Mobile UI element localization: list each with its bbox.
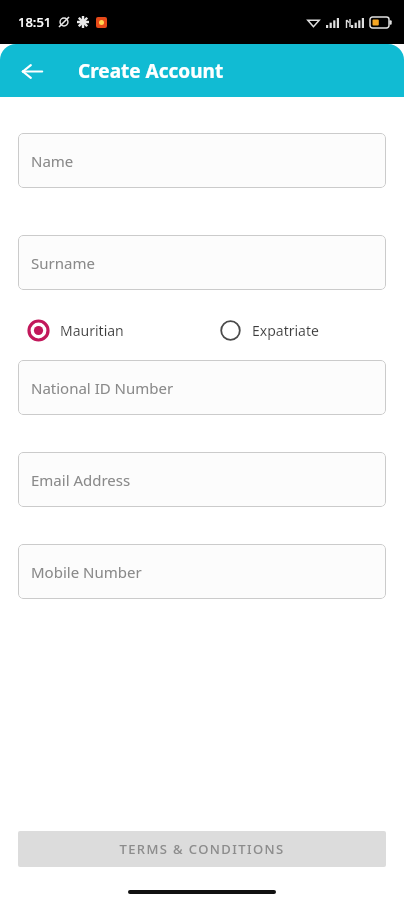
staticText: Surname — [31, 253, 95, 273]
staticText: Email Address — [31, 470, 131, 490]
staticText: Create Account — [78, 58, 224, 84]
button[interactable]: Name — [18, 133, 386, 188]
button[interactable]: Mobile Number — [18, 544, 386, 599]
button[interactable]: Expatriate — [210, 313, 319, 347]
button[interactable]: Back — [12, 51, 52, 91]
staticText: Mauritian — [60, 321, 124, 340]
staticText: Expatriate — [252, 321, 319, 340]
button[interactable]: Email Address — [18, 452, 386, 507]
button[interactable]: TERMS & CONDITIONS — [18, 831, 386, 867]
staticText: 18:51 — [18, 13, 52, 31]
button[interactable]: Mauritian — [18, 313, 210, 347]
staticText: TERMS & CONDITIONS — [119, 840, 285, 858]
staticText: National ID Number — [31, 378, 174, 398]
staticText: Mobile Number — [31, 562, 142, 582]
staticText: Name — [31, 151, 74, 171]
button[interactable]: National ID Number — [18, 360, 386, 415]
button[interactable]: Surname — [18, 235, 386, 290]
